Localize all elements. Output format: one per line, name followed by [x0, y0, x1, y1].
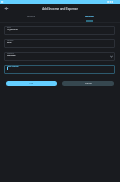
staticText: Add Income and Expense: [42, 7, 78, 11]
staticText: Cancel: [85, 82, 92, 85]
staticText: Add: [29, 82, 34, 85]
staticText: 17-Jun-2018: [7, 28, 18, 31]
button[interactable]: Back: [3, 5, 10, 12]
staticText: Groceries: [7, 54, 16, 57]
staticText: Category: [7, 52, 15, 54]
button[interactable]: Income: [2, 13, 60, 22]
staticText: Expense: [85, 15, 94, 18]
staticText: Date: [7, 26, 11, 28]
staticText: Amount: [7, 39, 14, 41]
button[interactable]: Amount: [4, 39, 115, 48]
button[interactable]: Date: [4, 26, 115, 35]
staticText: 5000: [7, 41, 12, 44]
button[interactable]: Cancel: [62, 81, 114, 86]
button[interactable]: Add: [6, 81, 57, 86]
button[interactable]: Note / Remark: [4, 65, 115, 74]
button[interactable]: Category: [4, 52, 115, 61]
staticText: Income: [27, 15, 35, 18]
button[interactable]: Expense: [60, 13, 118, 22]
staticText: Note / Remark: [7, 65, 19, 67]
